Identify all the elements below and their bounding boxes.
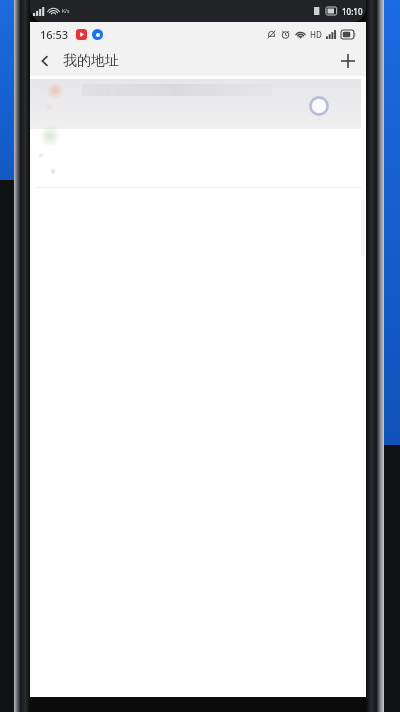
staticText: 10:10	[342, 6, 363, 17]
staticText: 我的地址	[63, 52, 119, 70]
button[interactable]: Add address	[332, 46, 364, 76]
button[interactable]: Back	[30, 46, 60, 76]
button[interactable]	[30, 76, 366, 188]
staticText: 16:53	[40, 27, 69, 42]
staticText: K/s	[62, 8, 70, 15]
staticText: HD	[310, 29, 322, 40]
